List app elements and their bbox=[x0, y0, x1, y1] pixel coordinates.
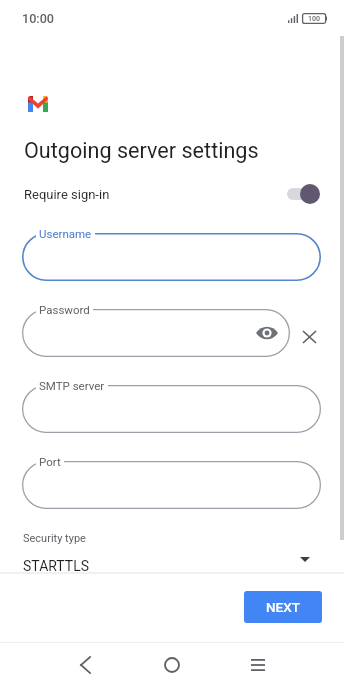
button[interactable]: NEXT bbox=[244, 591, 322, 623]
button[interactable]: Recent apps bbox=[246, 653, 270, 677]
staticText: NEXT bbox=[266, 599, 300, 615]
staticText: 10:00 bbox=[22, 11, 54, 26]
button[interactable]: Home bbox=[160, 653, 184, 677]
staticText: 100 bbox=[308, 15, 320, 23]
staticText: SMTP server bbox=[39, 379, 105, 392]
staticText: Username bbox=[39, 227, 92, 240]
staticText: Port bbox=[39, 455, 61, 468]
button[interactable]: Require sign-in bbox=[0, 178, 344, 210]
staticText: Security type bbox=[23, 532, 86, 545]
staticText: STARTTLS bbox=[23, 558, 90, 573]
button[interactable]: Back bbox=[73, 653, 97, 677]
staticText: Require sign-in bbox=[24, 187, 110, 202]
button[interactable]: Security type bbox=[0, 532, 344, 573]
button[interactable] bbox=[286, 182, 320, 206]
button[interactable]: Clear bbox=[295, 323, 323, 351]
button[interactable]: Show password bbox=[254, 320, 280, 346]
staticText: Password bbox=[39, 303, 90, 316]
staticText: Outgoing server settings bbox=[24, 138, 259, 163]
